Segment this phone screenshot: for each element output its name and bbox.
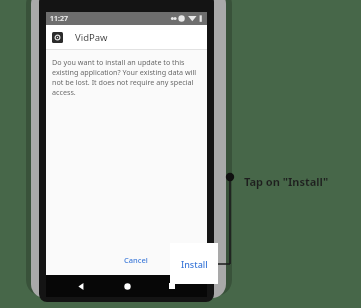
- button[interactable]: Install: [170, 243, 218, 284]
- button[interactable]: Back: [70, 275, 92, 297]
- staticText: Tap on "Install": [244, 174, 329, 189]
- staticText: Install: [172, 255, 195, 265]
- button[interactable]: Home: [116, 275, 138, 297]
- button[interactable]: Recent apps: [161, 275, 183, 297]
- staticText: VidPaw: [75, 31, 108, 44]
- staticText: Install: [181, 258, 208, 270]
- button[interactable]: Install: [168, 251, 199, 269]
- staticText: 11:27: [50, 14, 68, 24]
- button[interactable]: Cancel: [120, 251, 152, 269]
- staticText: Cancel: [124, 255, 148, 265]
- staticText: Do you want to install an update to this…: [52, 57, 201, 97]
